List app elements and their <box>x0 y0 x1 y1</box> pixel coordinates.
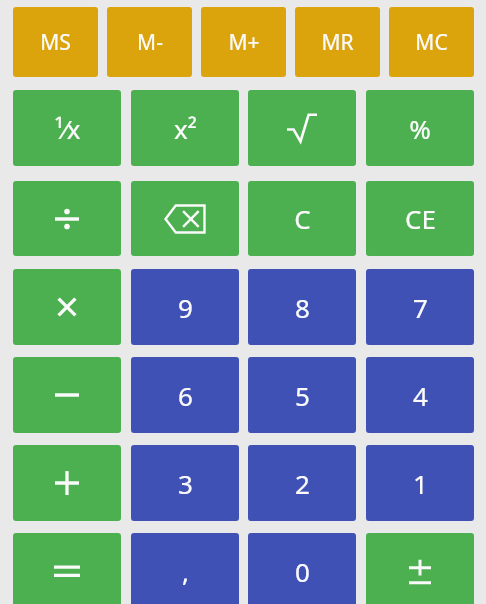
staticText: 2 <box>295 466 310 501</box>
staticText: 9 <box>178 290 193 325</box>
button[interactable]: Divide <box>13 181 121 256</box>
staticText: MR <box>321 28 354 57</box>
button[interactable]: % <box>366 90 474 166</box>
button[interactable]: 4 <box>366 357 474 433</box>
button[interactable]: C <box>248 181 356 256</box>
button[interactable]: 5 <box>248 357 356 433</box>
button[interactable]: 2 <box>248 445 356 521</box>
button[interactable]: 3 <box>131 445 239 521</box>
button[interactable]: 1 <box>366 445 474 521</box>
button[interactable]: Minus <box>13 357 121 433</box>
staticText: CE <box>405 201 436 236</box>
button[interactable]: Multiply <box>13 269 121 345</box>
button[interactable]: 8 <box>248 269 356 345</box>
staticText: MC <box>415 28 448 57</box>
button[interactable]: M+ <box>201 7 286 77</box>
button[interactable]: MC <box>389 7 474 77</box>
button[interactable]: M- <box>107 7 192 77</box>
staticText: , <box>182 554 189 589</box>
button[interactable]: Backspace <box>131 181 239 256</box>
staticText: 4 <box>413 378 428 413</box>
button[interactable]: 7 <box>366 269 474 345</box>
staticText: MS <box>40 28 71 57</box>
button[interactable]: 0 <box>248 533 356 604</box>
staticText: 8 <box>295 290 310 325</box>
button[interactable]: 9 <box>131 269 239 345</box>
staticText: C <box>294 201 311 236</box>
staticText: 7 <box>413 290 428 325</box>
button[interactable]: 6 <box>131 357 239 433</box>
button[interactable]: Plus minus sign <box>366 533 474 604</box>
staticText: 6 <box>178 378 193 413</box>
button[interactable]: Square root <box>248 90 356 166</box>
staticText: % <box>409 111 431 146</box>
staticText: 3 <box>178 466 193 501</box>
button[interactable]: MS <box>13 7 98 77</box>
button[interactable]: MR <box>295 7 380 77</box>
staticText: 5 <box>295 378 310 413</box>
staticText: M+ <box>228 28 260 57</box>
staticText: 1 <box>413 466 428 501</box>
button[interactable]: , <box>131 533 239 604</box>
staticText: M- <box>137 28 163 57</box>
button[interactable]: Plus <box>13 445 121 521</box>
button[interactable]: Equals <box>13 533 121 604</box>
staticText: 0 <box>295 554 310 589</box>
button[interactable]: One divided by x <box>13 90 121 166</box>
button[interactable]: CE <box>366 181 474 256</box>
button[interactable]: x squared <box>131 90 239 166</box>
staticText: ¹⁄x <box>54 111 81 146</box>
staticText: x² <box>174 111 197 146</box>
